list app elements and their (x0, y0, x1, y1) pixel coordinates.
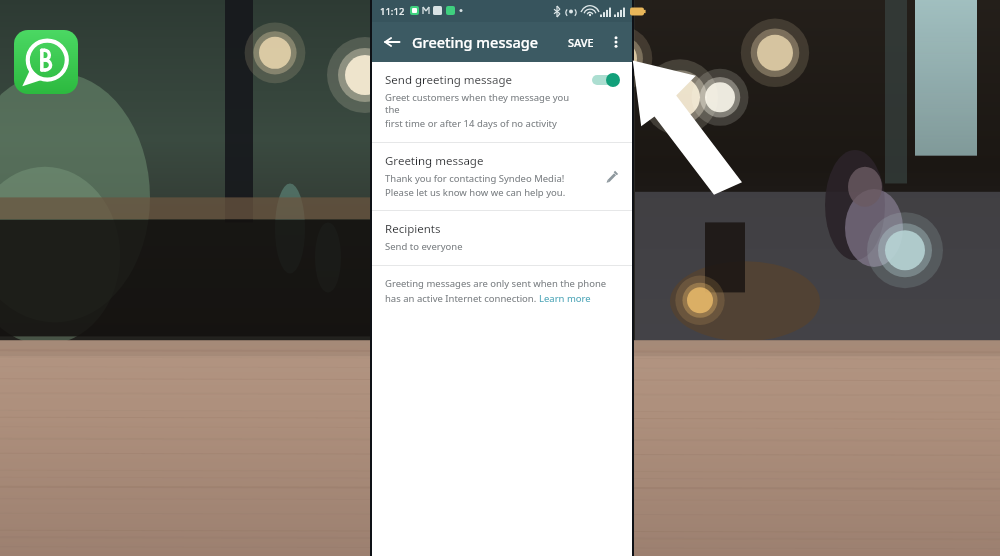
staticText: Greet customers when they message you th… (385, 91, 586, 116)
staticText: first time or after 14 days of no activi… (385, 117, 557, 130)
button[interactable]: Recipients (372, 211, 632, 265)
staticText: Greeting message (385, 153, 484, 169)
button[interactable]: Send greeting message (372, 62, 632, 142)
staticText: 11:12 (380, 5, 405, 18)
staticText: Thank you for contacting Syndeo Media! (385, 172, 565, 185)
other: Send greeting message toggle (592, 73, 622, 87)
button[interactable]: SAVE (562, 29, 600, 56)
button[interactable]: Learn more (539, 292, 591, 305)
staticText: SAVE (568, 35, 594, 50)
staticText: Learn more (539, 292, 591, 305)
staticText: Send to everyone (385, 240, 463, 253)
button[interactable]: Edit greeting message (598, 163, 624, 189)
staticText: Please let us know how we can help you. (385, 186, 566, 199)
staticText: Recipients (385, 221, 441, 237)
staticText: has an active Internet connection. (385, 292, 539, 305)
button[interactable]: WhatsApp Business (14, 30, 78, 94)
staticText: Send greeting message (385, 72, 513, 88)
button[interactable]: Greeting message (372, 143, 632, 210)
other: Pointer arrow (630, 52, 770, 192)
button[interactable]: More options (600, 22, 632, 62)
staticText: Greeting message (412, 32, 539, 52)
staticText: Greeting messages are only sent when the… (385, 277, 607, 290)
button[interactable]: Back (372, 22, 412, 62)
